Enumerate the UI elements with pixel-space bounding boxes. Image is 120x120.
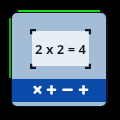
button[interactable]: Plus [76, 79, 91, 102]
staticText: 2 x 2 = 4 [35, 40, 86, 58]
button[interactable]: Multiply [30, 79, 45, 102]
button[interactable]: Subtract [60, 79, 75, 102]
button[interactable]: Scan equation [30, 29, 91, 69]
button[interactable]: Add [44, 79, 59, 102]
